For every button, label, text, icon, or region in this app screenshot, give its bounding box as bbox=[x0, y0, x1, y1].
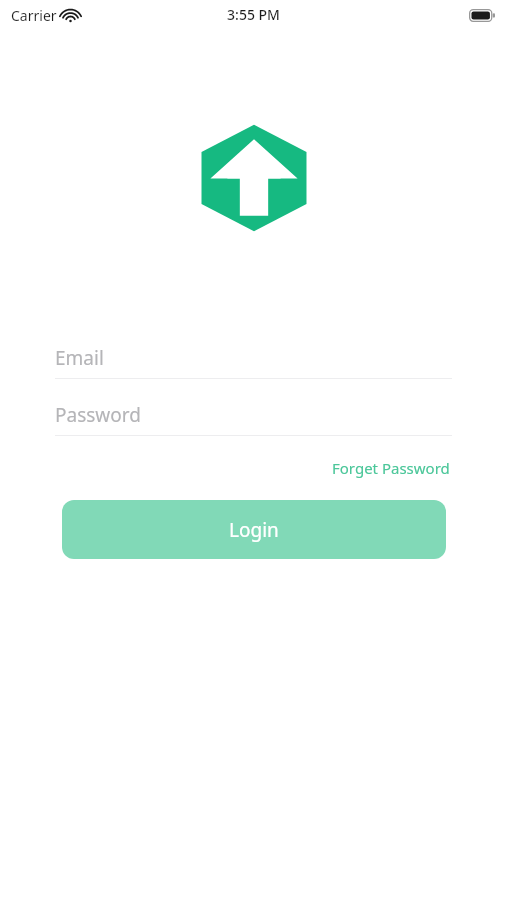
staticText: Login bbox=[229, 517, 279, 543]
staticText: Carrier bbox=[11, 6, 57, 25]
button[interactable]: Forget Password bbox=[330, 454, 452, 482]
staticText: Email bbox=[55, 345, 104, 371]
button[interactable]: Login bbox=[62, 500, 446, 559]
button[interactable]: Email bbox=[55, 338, 452, 379]
button[interactable]: Password bbox=[55, 395, 452, 436]
staticText: Forget Password bbox=[332, 458, 450, 478]
staticText: Password bbox=[55, 402, 141, 428]
staticText: 3:55 PM bbox=[227, 5, 280, 24]
